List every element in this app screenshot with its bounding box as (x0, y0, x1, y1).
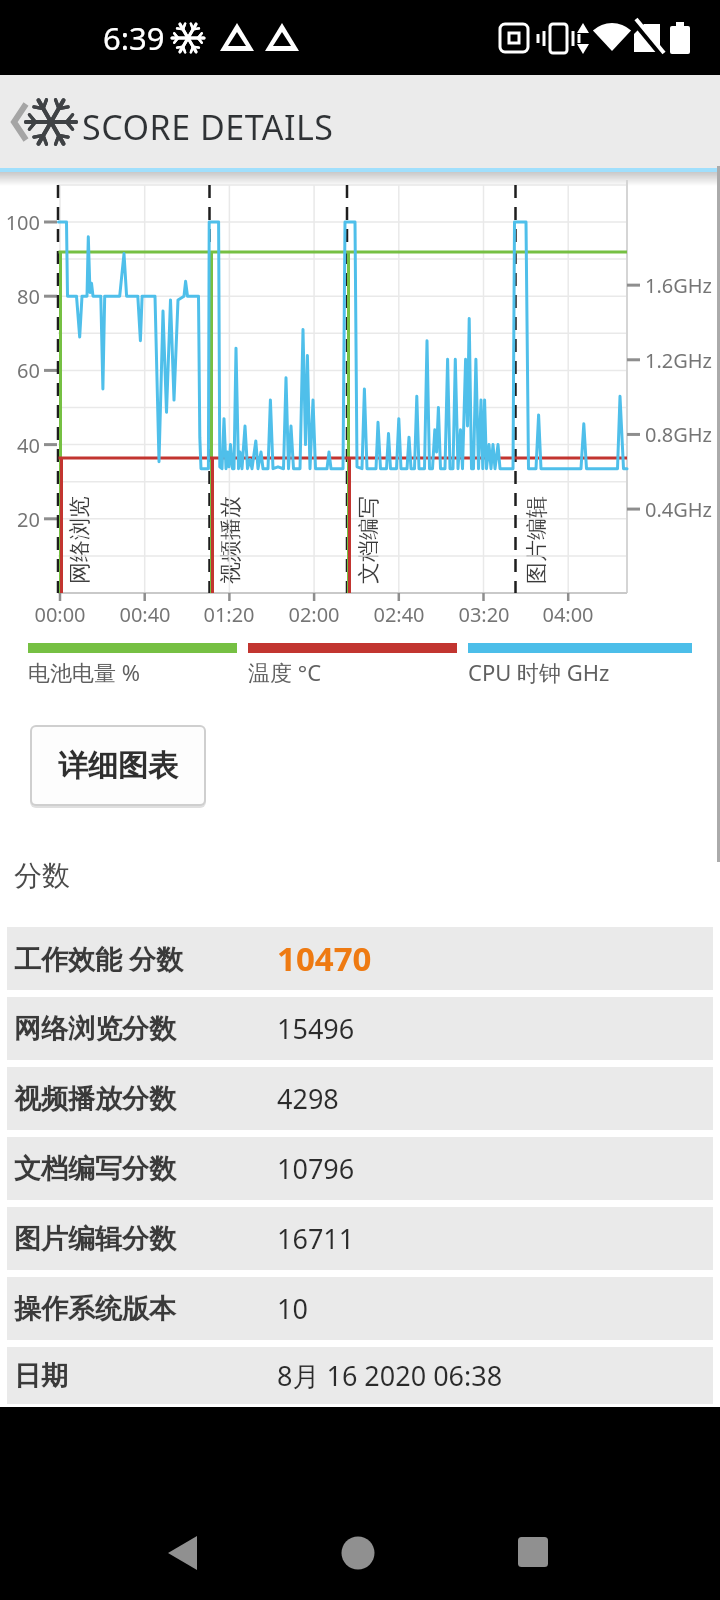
staticText: 温度 °C (248, 657, 322, 687)
staticText: 6:39 (103, 17, 165, 59)
staticText: 0.4GHz (645, 496, 713, 523)
staticText: 1.6GHz (645, 272, 713, 299)
staticText: 文档编写分数 (14, 1152, 176, 1186)
staticText: 8月 16 2020 06:38 (277, 1357, 503, 1394)
staticText: 网络浏览分数 (14, 1012, 176, 1046)
staticText: 10796 (277, 1150, 355, 1187)
staticText: 分数 (14, 858, 70, 893)
staticText: 0.8GHz (645, 421, 713, 448)
staticText: 10 (277, 1290, 308, 1327)
staticText: 视频播放 (217, 496, 245, 584)
staticText: CPU 时钟 GHz (468, 657, 610, 687)
staticText: 日期 (14, 1359, 68, 1393)
staticText: 15496 (277, 1010, 355, 1047)
staticText: 40 (0, 432, 40, 459)
staticText: 20 (0, 506, 40, 533)
staticText: 操作系统版本 (14, 1292, 176, 1326)
staticText: 图片编辑分数 (14, 1222, 176, 1256)
staticText: 文档编写 (355, 496, 383, 584)
button[interactable] (323, 1518, 393, 1588)
button[interactable] (498, 1518, 568, 1588)
staticText: 02:40 (369, 601, 429, 628)
staticText: 00:40 (115, 601, 175, 628)
staticText: 工作效能 分数 (14, 940, 184, 977)
staticText: 60 (0, 357, 40, 384)
staticText: 详细图表 (58, 747, 178, 785)
button[interactable]: 详细图表 (32, 727, 204, 804)
staticText: 10470 (277, 936, 372, 981)
staticText: SCORE DETAILS (82, 104, 334, 150)
staticText: 100 (0, 209, 40, 236)
staticText: 02:00 (284, 601, 344, 628)
button[interactable] (147, 1518, 217, 1588)
staticText: 01:20 (199, 601, 259, 628)
staticText: 4298 (277, 1080, 339, 1117)
staticText: 图片编辑 (523, 496, 551, 584)
staticText: 80 (0, 283, 40, 310)
staticText: 03:20 (454, 601, 514, 628)
staticText: 16711 (277, 1220, 355, 1257)
staticText: 电池电量 % (28, 657, 141, 687)
staticText: 视频播放分数 (14, 1082, 176, 1116)
staticText: 04:00 (538, 601, 598, 628)
staticText: 00:00 (30, 601, 90, 628)
button[interactable] (0, 75, 78, 166)
staticText: 网络浏览 (66, 496, 94, 584)
staticText: 1.2GHz (645, 347, 713, 374)
